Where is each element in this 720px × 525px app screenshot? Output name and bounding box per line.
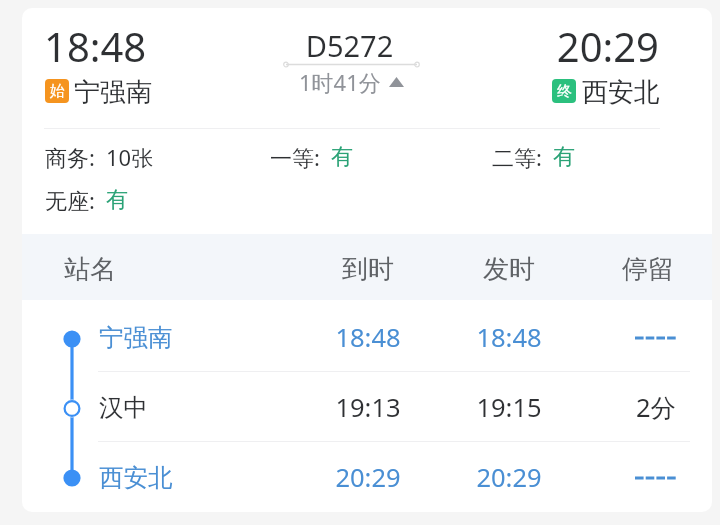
staticText: 有 [553, 143, 575, 171]
staticText: 19:13 [298, 390, 438, 425]
staticText: 汉中 [99, 392, 148, 423]
button[interactable]: 西安北 [22, 442, 712, 512]
staticText: 停留 [578, 253, 712, 286]
staticText: 有 [106, 186, 128, 214]
staticText: 站名 [64, 253, 116, 286]
button[interactable]: 一等: [270, 142, 353, 172]
staticText: 20:29 [522, 19, 659, 73]
staticText: 18:48 [439, 320, 579, 355]
staticText: 一等: [270, 142, 320, 172]
staticText: 20:29 [439, 460, 579, 495]
staticText: 有 [331, 143, 353, 171]
staticText: 西安北 [99, 462, 173, 493]
staticText: 宁强南 [99, 322, 173, 353]
staticText: 20:29 [298, 460, 438, 495]
staticText: 宁强南 [74, 76, 152, 109]
staticText: 发时 [439, 253, 579, 286]
staticText: 19:15 [439, 390, 579, 425]
staticText: 无座: [45, 185, 95, 215]
staticText: 10张 [106, 142, 154, 172]
staticText: 18:48 [298, 320, 438, 355]
staticText: 2分 [586, 390, 712, 425]
staticText: 到时 [298, 253, 438, 286]
button[interactable]: 无座: [45, 185, 128, 215]
staticText: 始 [50, 82, 65, 101]
button[interactable]: 二等: [492, 142, 575, 172]
other: Collapse details [389, 77, 404, 87]
staticText: 1时41分 [299, 67, 381, 97]
staticText: 西安北 [582, 76, 660, 109]
button[interactable]: 宁强南 [22, 302, 712, 372]
staticText: 二等: [492, 142, 542, 172]
staticText: 商务: [45, 142, 95, 172]
button[interactable]: 汉中 [22, 372, 712, 442]
staticText: D5272 [258, 26, 441, 65]
staticText: 终 [557, 82, 572, 101]
staticText: 18:48 [44, 19, 147, 73]
button[interactable]: 商务: [45, 142, 154, 172]
